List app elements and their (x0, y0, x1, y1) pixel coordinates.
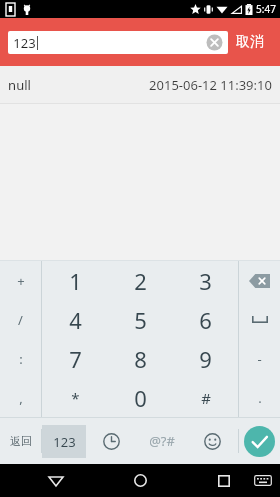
button[interactable]: Back (34, 464, 78, 497)
button[interactable]: Confirm (239, 418, 280, 464)
button[interactable]: + (0, 261, 41, 300)
button[interactable]: Space (239, 300, 280, 339)
button[interactable]: - (239, 339, 280, 378)
button[interactable]: : (0, 339, 41, 378)
staticText: . (258, 389, 262, 407)
button[interactable]: 5 (108, 300, 173, 339)
button[interactable]: , (0, 378, 41, 417)
button[interactable]: Clear text (206, 34, 223, 51)
button[interactable]: Home (118, 464, 162, 497)
button[interactable]: * (42, 378, 108, 417)
button[interactable]: 3 (173, 261, 238, 300)
button[interactable]: 123 (8, 31, 228, 54)
button[interactable]: . (239, 378, 280, 417)
staticText: 123 (53, 433, 76, 451)
button[interactable]: 取消 (228, 18, 272, 66)
button[interactable]: @?# (136, 418, 187, 464)
button[interactable]: 6 (173, 300, 238, 339)
staticText: 2015-06-12 11:39:10 (149, 76, 272, 94)
staticText: , (19, 389, 23, 407)
staticText: 9 (199, 344, 212, 374)
button[interactable]: Recent (86, 418, 136, 464)
staticText: 7 (69, 344, 82, 374)
staticText: # (201, 388, 211, 408)
button[interactable]: # (173, 378, 238, 417)
staticText: @?# (149, 432, 175, 450)
staticText: 8 (134, 344, 147, 374)
button[interactable]: 1 (42, 261, 108, 300)
staticText: 返回 (10, 434, 32, 448)
staticText: / (18, 311, 23, 329)
staticText: 1 (69, 266, 82, 296)
button[interactable]: 0 (108, 378, 173, 417)
staticText: 2 (134, 266, 147, 296)
staticText: : (19, 350, 23, 368)
staticText: - (257, 350, 262, 368)
staticText: 5 (134, 305, 147, 335)
button[interactable]: 4 (42, 300, 108, 339)
staticText: 6 (199, 305, 212, 335)
button[interactable]: 9 (173, 339, 238, 378)
button[interactable]: 2 (108, 261, 173, 300)
button[interactable]: Recents (202, 464, 246, 497)
button[interactable]: 7 (42, 339, 108, 378)
staticText: 0 (134, 383, 147, 413)
button[interactable]: 8 (108, 339, 173, 378)
staticText: 3 (199, 266, 212, 296)
button[interactable]: / (0, 300, 41, 339)
staticText: + (17, 272, 25, 290)
button[interactable]: 返回 (0, 418, 41, 464)
button[interactable]: Switch keyboard (246, 464, 280, 497)
button[interactable]: Backspace (239, 261, 280, 300)
button[interactable]: Emoji (187, 418, 238, 464)
staticText: 取消 (236, 33, 264, 51)
button[interactable]: null (0, 66, 280, 103)
staticText: 123 (13, 34, 36, 52)
staticText: * (71, 388, 80, 408)
staticText: 4 (69, 305, 82, 335)
staticText: null (8, 76, 31, 94)
staticText: 5:47 (256, 2, 276, 16)
button[interactable]: 123 (42, 418, 86, 464)
